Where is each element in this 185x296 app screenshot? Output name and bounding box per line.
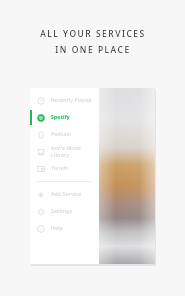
button[interactable]: Podcast bbox=[30, 126, 99, 143]
staticText: Ann's Music Library bbox=[51, 145, 99, 159]
button[interactable]: Help bbox=[30, 220, 99, 237]
staticText: Spotify bbox=[51, 114, 70, 121]
staticText: Podcast bbox=[51, 131, 72, 138]
staticText: Tuneln bbox=[51, 165, 69, 172]
button[interactable]: Ann's Music Library bbox=[30, 143, 99, 160]
staticText: IN ONE PLACE bbox=[55, 44, 131, 56]
staticText: Settings bbox=[51, 208, 73, 215]
staticText: ALL YOUR SERVICES bbox=[40, 28, 146, 40]
button[interactable]: Recently Played bbox=[30, 92, 99, 109]
staticText: Help bbox=[51, 225, 63, 232]
button[interactable]: Add Service bbox=[30, 186, 99, 203]
staticText: Recently Played bbox=[51, 97, 92, 104]
staticText: Add Service bbox=[51, 191, 82, 198]
button[interactable]: Tuneln bbox=[30, 160, 99, 177]
button[interactable]: Settings bbox=[30, 203, 99, 220]
button[interactable]: Spotify bbox=[30, 109, 99, 126]
